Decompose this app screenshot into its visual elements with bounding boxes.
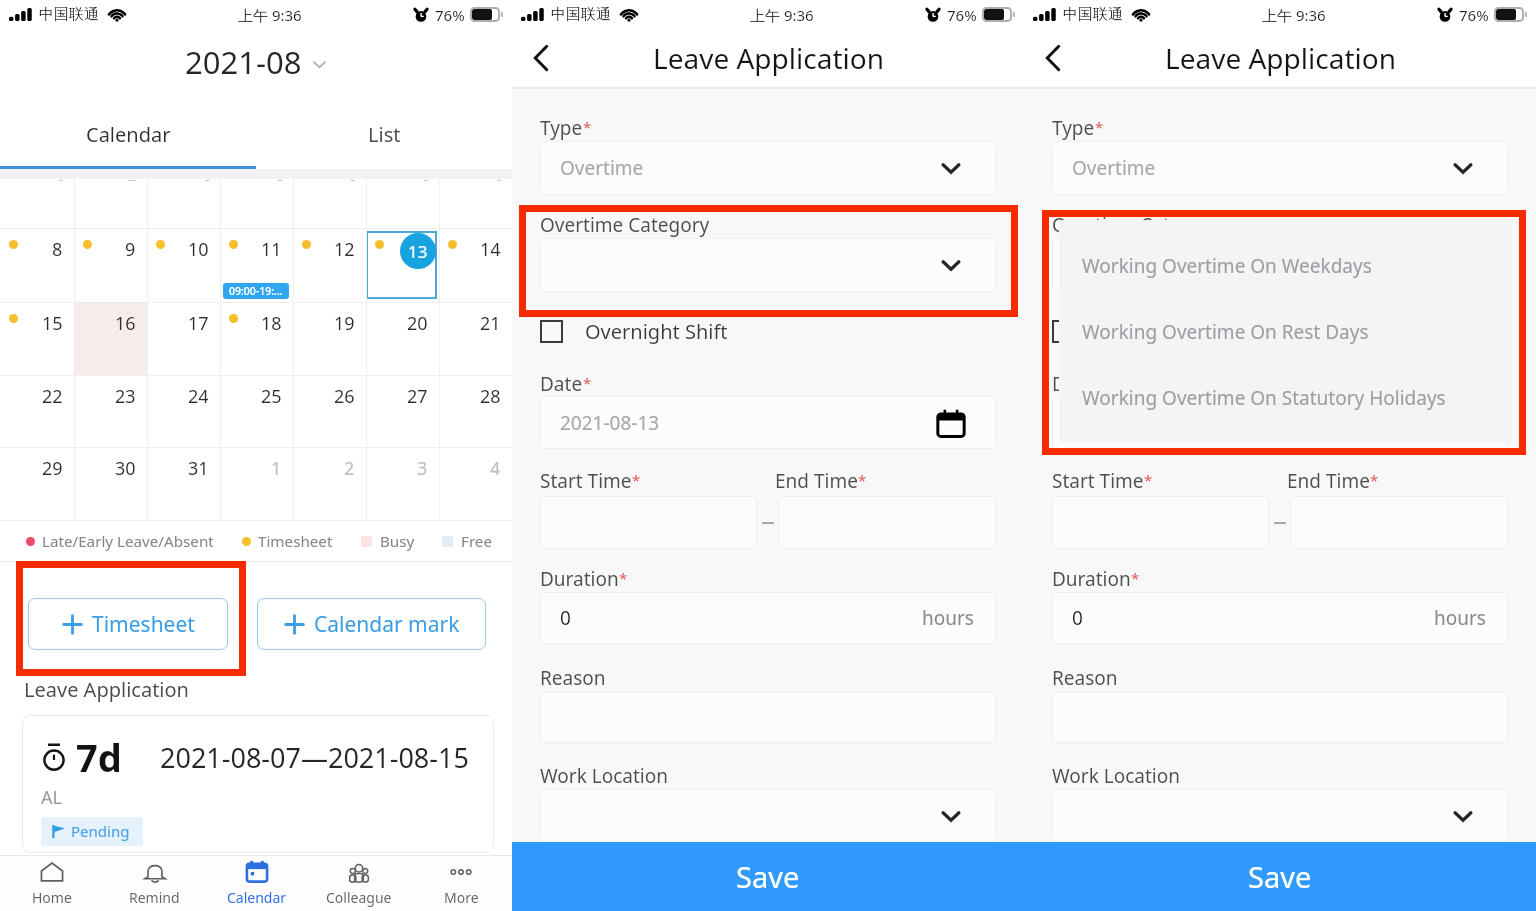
- staticText: 中国联通: [39, 5, 99, 24]
- button[interactable]: 10: [147, 229, 220, 302]
- staticText: Overnight Shift: [1097, 318, 1240, 345]
- staticText: Home: [32, 888, 72, 907]
- staticText: Work Location: [540, 763, 668, 789]
- button[interactable]: Timesheet: [28, 598, 228, 650]
- button[interactable]: [540, 789, 996, 843]
- button[interactable]: 26: [293, 376, 366, 447]
- button[interactable]: 29: [0, 448, 74, 520]
- staticText: 22: [42, 384, 63, 409]
- button[interactable]: 12: [293, 229, 366, 302]
- staticText: Busy: [380, 531, 415, 552]
- staticText: 12: [334, 237, 355, 262]
- staticText: Leave Application: [1165, 39, 1396, 77]
- button[interactable]: Overtime: [1052, 141, 1508, 195]
- button[interactable]: 2021-08-13: [540, 396, 996, 449]
- button[interactable]: 27: [366, 376, 439, 447]
- staticText: 14: [480, 237, 501, 262]
- button[interactable]: Working Overtime On Statutory Holidays: [1082, 385, 1512, 442]
- button[interactable]: [1052, 789, 1508, 843]
- button[interactable]: List: [256, 81, 512, 169]
- button[interactable]: 17: [147, 303, 220, 375]
- staticText: hours: [1434, 605, 1486, 631]
- staticText: 76%: [435, 5, 465, 25]
- button[interactable]: Overnight Shift: [537, 316, 731, 347]
- button[interactable]: Remind: [103, 856, 206, 911]
- button[interactable]: 28: [439, 376, 512, 447]
- button[interactable]: Home: [0, 856, 103, 911]
- staticText: *: [1370, 470, 1379, 490]
- button[interactable]: 24: [147, 376, 220, 447]
- button[interactable]: Calendar: [206, 856, 308, 911]
- staticText: 1: [271, 456, 282, 481]
- button[interactable]: 25: [220, 376, 293, 447]
- button[interactable]: 7d: [22, 715, 494, 853]
- button[interactable]: Overnight Shift: [1049, 316, 1243, 347]
- button[interactable]: 1: [220, 448, 293, 520]
- staticText: 中国联通: [551, 5, 611, 24]
- button[interactable]: 19: [293, 303, 366, 375]
- staticText: Remind: [129, 888, 180, 907]
- button[interactable]: 8: [0, 229, 74, 302]
- staticText: 28: [480, 384, 501, 409]
- button[interactable]: 20: [366, 303, 439, 375]
- button[interactable]: 31: [147, 448, 220, 520]
- button[interactable]: 2021-08: [179, 35, 331, 87]
- staticText: *: [583, 117, 592, 137]
- button[interactable]: 2: [293, 448, 366, 520]
- button[interactable]: Calendar: [0, 81, 256, 169]
- staticText: Free: [461, 531, 492, 552]
- button[interactable]: 16: [74, 303, 147, 375]
- button[interactable]: Overtime: [540, 141, 996, 195]
- button[interactable]: Working Overtime On Weekdays: [1082, 253, 1512, 319]
- staticText: More: [444, 888, 479, 907]
- button[interactable]: 18: [220, 303, 293, 375]
- button[interactable]: Save: [512, 842, 1024, 911]
- staticText: *: [858, 470, 867, 490]
- button[interactable]: 3: [366, 448, 439, 520]
- button[interactable]: Back: [1031, 36, 1075, 80]
- button[interactable]: Back: [519, 36, 563, 80]
- staticText: Calendar: [227, 888, 287, 907]
- button[interactable]: 22: [0, 376, 74, 447]
- staticText: Working Overtime On Statutory Holidays: [1082, 385, 1446, 411]
- staticText: 13: [408, 240, 428, 263]
- staticText: Overtime: [560, 155, 644, 181]
- button[interactable]: 0: [1052, 592, 1508, 644]
- button[interactable]: [540, 238, 996, 292]
- button[interactable]: [1052, 238, 1508, 292]
- staticText: 8: [52, 237, 63, 262]
- button[interactable]: Colleague: [308, 856, 410, 911]
- staticText: Timesheet: [258, 531, 333, 552]
- button[interactable]: 4: [439, 448, 512, 520]
- button[interactable]: 0: [540, 592, 996, 644]
- button[interactable]: 15: [0, 303, 74, 375]
- button[interactable]: More: [410, 856, 512, 911]
- button[interactable]: 11: [220, 229, 293, 302]
- button[interactable]: 30: [74, 448, 147, 520]
- staticText: *: [1095, 373, 1104, 393]
- button[interactable]: Save: [1024, 842, 1536, 911]
- button[interactable]: Working Overtime On Rest Days: [1082, 319, 1512, 385]
- staticText: 4: [490, 456, 501, 481]
- staticText: 2021-08-13: [560, 410, 660, 436]
- button[interactable]: 13: [366, 229, 439, 302]
- button[interactable]: 14: [439, 229, 512, 302]
- button[interactable]: Calendar mark: [257, 598, 486, 650]
- staticText: 17: [188, 311, 209, 336]
- button[interactable]: 9: [74, 229, 147, 302]
- button[interactable]: 2021-08-13: [1052, 396, 1508, 449]
- button[interactable]: 21: [439, 303, 512, 375]
- staticText: Date: [540, 371, 583, 397]
- button[interactable]: 23: [74, 376, 147, 447]
- staticText: 31: [188, 456, 209, 481]
- staticText: 10: [188, 237, 209, 262]
- staticText: 2: [344, 456, 355, 481]
- staticText: 7d: [76, 731, 122, 783]
